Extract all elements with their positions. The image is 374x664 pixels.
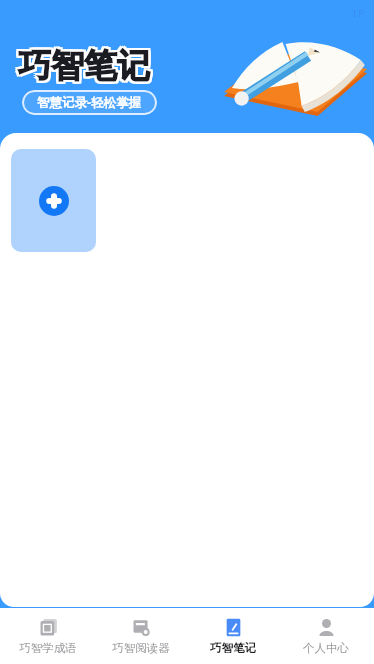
staticText: 智慧记录-轻松掌握 [37, 94, 142, 111]
staticText: 个人中心 [303, 641, 349, 655]
staticText: 巧智笔记 [20, 43, 152, 85]
button[interactable]: 智慧记录-轻松掌握 [22, 90, 157, 115]
staticText: 巧智笔记 [18, 47, 150, 89]
staticText: I P [353, 7, 364, 19]
staticText: 巧智笔记 [210, 641, 256, 655]
staticText: 巧智笔记 [16, 47, 148, 89]
staticText: 巧智笔记 [16, 45, 148, 87]
staticText: 巧智阅读器 [112, 641, 170, 655]
staticText: 巧智笔记 [18, 45, 150, 87]
staticText: 巧智笔记 [20, 47, 152, 89]
button[interactable]: 巧智阅读器 [96, 608, 186, 664]
button[interactable]: 巧智笔记 [188, 608, 278, 664]
staticText: 巧智笔记 [20, 45, 152, 87]
staticText: 巧智学成语 [19, 641, 77, 655]
button[interactable]: 个人中心 [281, 608, 371, 664]
button[interactable]: 巧智学成语 [3, 608, 93, 664]
staticText: 巧智笔记 [16, 43, 148, 85]
staticText: 巧智笔记 [18, 43, 150, 85]
button[interactable]: 新建笔记 [11, 149, 96, 252]
